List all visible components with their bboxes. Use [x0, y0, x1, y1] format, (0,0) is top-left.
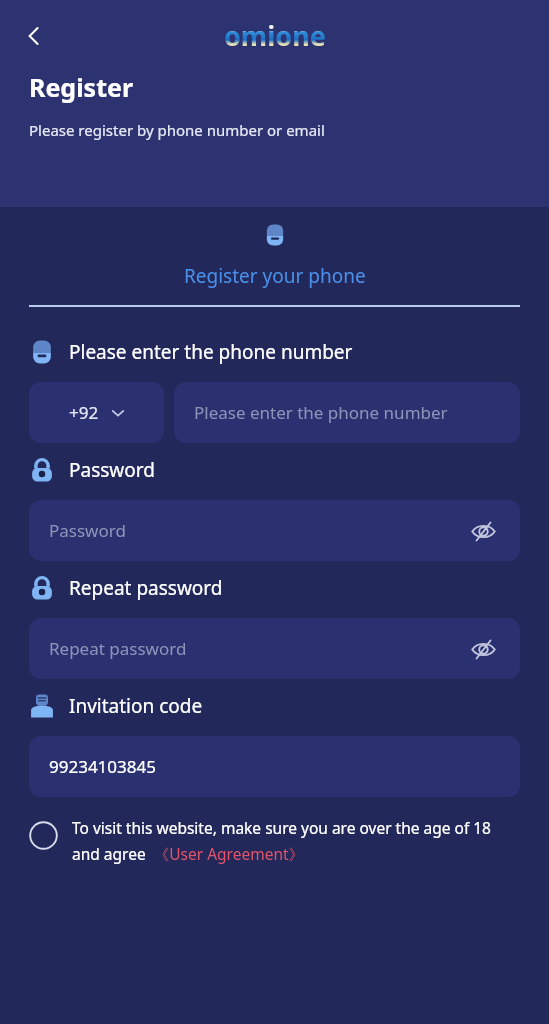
button[interactable]: Back [10, 12, 58, 60]
staticText: and agree 《User Agreement》 [72, 843, 305, 864]
button[interactable]: To visit this website, make sure you are… [0, 817, 549, 864]
staticText: Repeat password [69, 575, 223, 601]
button[interactable]: 99234103845 [29, 736, 520, 797]
staticText: Password [49, 519, 126, 542]
staticText: Invitation code [69, 693, 203, 719]
staticText: Password [69, 457, 155, 483]
button[interactable]: Show password [466, 632, 500, 666]
staticText: Register [29, 70, 134, 104]
staticText: Repeat password [49, 637, 187, 660]
staticText: 99234103845 [49, 755, 156, 778]
staticText: To visit this website, make sure you are… [72, 817, 491, 838]
button[interactable]: Password [29, 500, 520, 561]
button[interactable]: Register your phone [176, 261, 374, 291]
button[interactable]: Please enter the phone number [174, 382, 520, 443]
staticText: Please enter the phone number [194, 401, 448, 424]
button[interactable]: Show password [466, 514, 500, 548]
button[interactable]: Repeat password [29, 618, 520, 679]
staticText: Please enter the phone number [69, 339, 353, 365]
staticText: omione [224, 17, 326, 54]
staticText: Please register by phone number or email [29, 120, 325, 140]
staticText: +92 [69, 401, 99, 424]
staticText: Register your phone [184, 263, 366, 289]
button[interactable]: +92 [29, 382, 164, 443]
